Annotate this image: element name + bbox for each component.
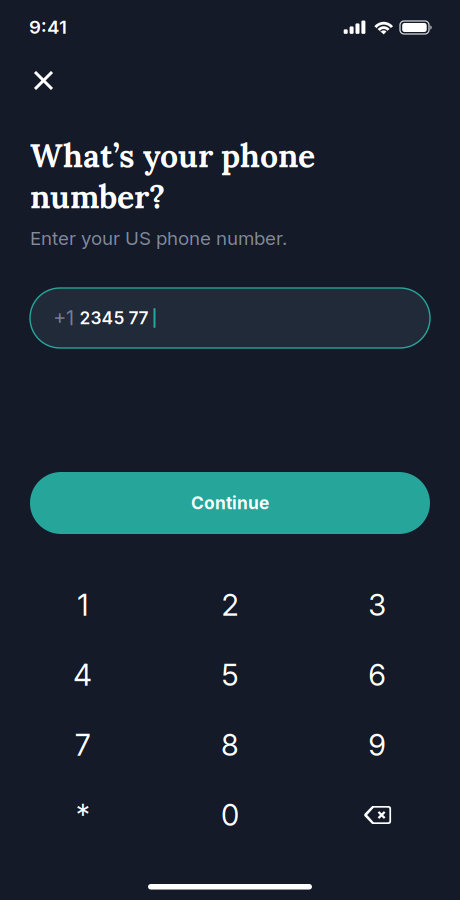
staticText: 2345 77 [79,307,148,328]
button[interactable]: 5 [156,640,304,710]
button[interactable]: 1 [9,570,156,640]
button[interactable]: Close [23,60,64,101]
staticText: 5 [221,657,238,693]
button[interactable]: 2 [156,570,304,640]
staticText: 0 [221,797,239,833]
button[interactable]: 8 [156,710,304,780]
staticText: 2 [221,587,238,623]
button[interactable]: 3 [304,570,451,640]
staticText: 3 [368,587,386,623]
staticText: What’s your phone number? [30,135,315,217]
staticText: * [76,797,90,833]
button[interactable]: 9 [304,710,451,780]
staticText: 9:41 [29,16,67,38]
button[interactable]: 7 [9,710,156,780]
staticText: 4 [73,657,92,693]
button[interactable]: * [9,780,156,850]
staticText: Enter your US phone number. [30,227,287,250]
button[interactable]: 4 [9,640,156,710]
staticText: Continue [191,492,269,513]
staticText: 1 [77,587,88,623]
staticText: 7 [75,727,91,763]
button[interactable]: Continue [30,472,430,534]
button[interactable]: 6 [304,640,451,710]
staticText: 9 [368,727,386,763]
button[interactable]: 0 [156,780,304,850]
staticText: 6 [368,657,386,693]
button[interactable]: Delete [304,780,451,850]
staticText: 8 [221,727,239,763]
staticText: +1 [53,306,74,330]
